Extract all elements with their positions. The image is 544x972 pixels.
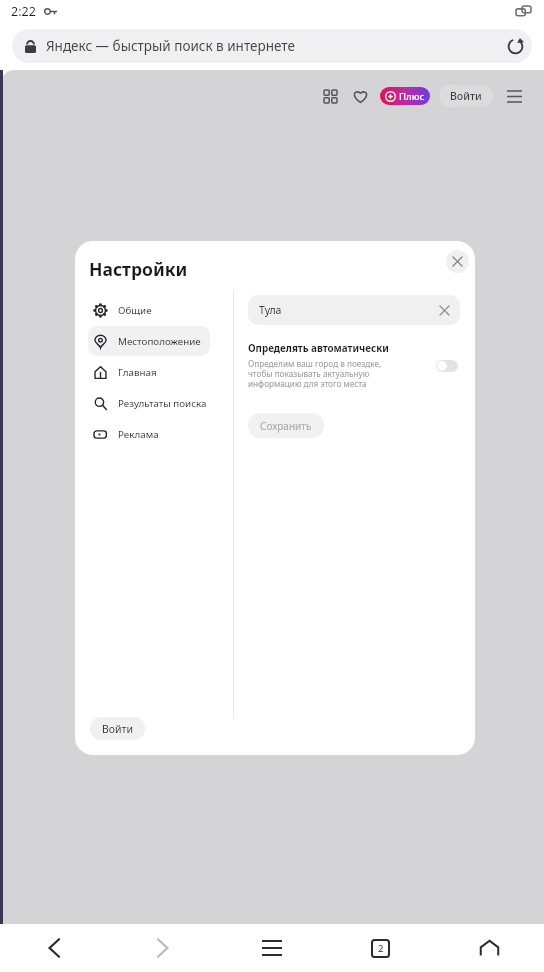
button[interactable]: Войти: [439, 85, 493, 107]
staticText: Определим ваш город в поездке, чтобы пок…: [248, 358, 400, 390]
staticText: Войти: [102, 722, 133, 736]
button[interactable]: Back: [0, 924, 108, 972]
button[interactable]: Местоположение: [88, 326, 210, 356]
button[interactable]: Общие: [88, 295, 210, 325]
button[interactable]: Detect location automatically: [436, 360, 458, 372]
staticText: Плюс: [399, 90, 425, 103]
button[interactable]: Тула: [248, 295, 460, 325]
staticText: Реклама: [118, 428, 159, 441]
staticText: 2: [378, 942, 384, 955]
button[interactable]: Tabs: 2: [326, 924, 435, 972]
button[interactable]: Menu: [217, 924, 326, 972]
staticText: Главная: [118, 366, 157, 379]
staticText: Общие: [118, 304, 152, 317]
staticText: Войти: [450, 89, 482, 103]
staticText: 2:22: [11, 3, 36, 20]
button[interactable]: Forward: [108, 924, 217, 972]
button[interactable]: Сохранить: [248, 413, 324, 438]
staticText: Тула: [259, 303, 282, 317]
button[interactable]: Reload: [498, 29, 532, 63]
button[interactable]: Close: [446, 250, 469, 273]
button[interactable]: Home: [435, 924, 544, 972]
button[interactable]: Clear: [430, 296, 458, 324]
button[interactable]: Apps: [315, 81, 345, 111]
button[interactable]: Главная: [88, 357, 210, 387]
button[interactable]: Войти: [90, 717, 145, 740]
button[interactable]: Favorites: [345, 81, 375, 111]
button[interactable]: Плюс: [380, 87, 430, 105]
staticText: Яндекс — быстрый поиск в интернете: [46, 37, 295, 55]
button[interactable]: Яндекс — быстрый поиск в интернете: [12, 29, 532, 63]
staticText: Определять автоматически: [248, 342, 389, 355]
staticText: Сохранить: [260, 419, 312, 433]
staticText: Настройки: [89, 257, 188, 281]
staticText: Результаты поиска: [118, 397, 207, 410]
button[interactable]: Реклама: [88, 419, 210, 449]
button[interactable]: Результаты поиска: [88, 388, 210, 418]
button[interactable]: Menu: [499, 81, 529, 111]
staticText: Местоположение: [118, 335, 201, 348]
